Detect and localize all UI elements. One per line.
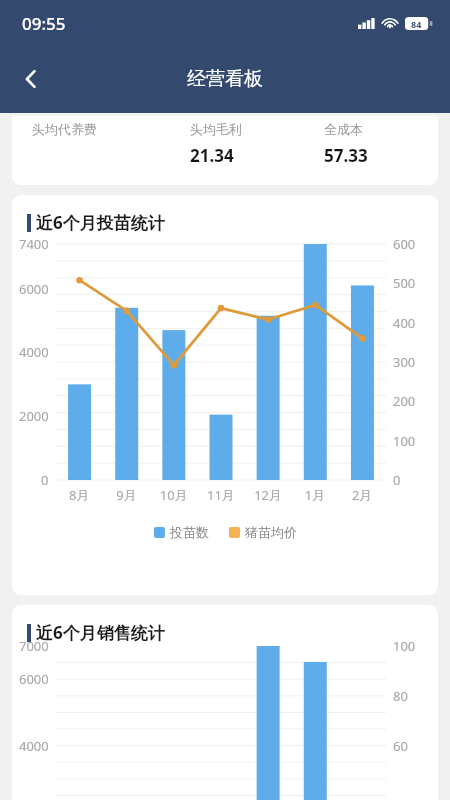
button[interactable]: 投苗数 bbox=[154, 524, 209, 540]
button[interactable]: 猪苗均价 bbox=[229, 524, 297, 540]
staticText: 猪苗均价 bbox=[245, 524, 297, 540]
staticText: 09:55 bbox=[22, 12, 66, 35]
staticText: 近6个月销售统计 bbox=[36, 621, 165, 644]
staticText: 投苗数 bbox=[170, 524, 209, 540]
staticText: 经营看板 bbox=[187, 67, 263, 91]
button[interactable]: Back bbox=[8, 56, 54, 102]
staticText: 近6个月投苗统计 bbox=[36, 211, 165, 234]
staticText: 57.33 bbox=[324, 144, 368, 167]
staticText: 21.34 bbox=[190, 144, 234, 167]
staticText: 全成本 bbox=[324, 121, 363, 137]
staticText: 头均代养费 bbox=[32, 121, 97, 137]
staticText: 头均毛利 bbox=[190, 121, 242, 137]
button[interactable]: 近6个月投苗统计 bbox=[12, 195, 438, 595]
staticText: 84 bbox=[411, 18, 422, 30]
button[interactable]: 头均代养费 bbox=[12, 116, 438, 185]
button[interactable]: 近6个月销售统计 bbox=[12, 605, 438, 800]
